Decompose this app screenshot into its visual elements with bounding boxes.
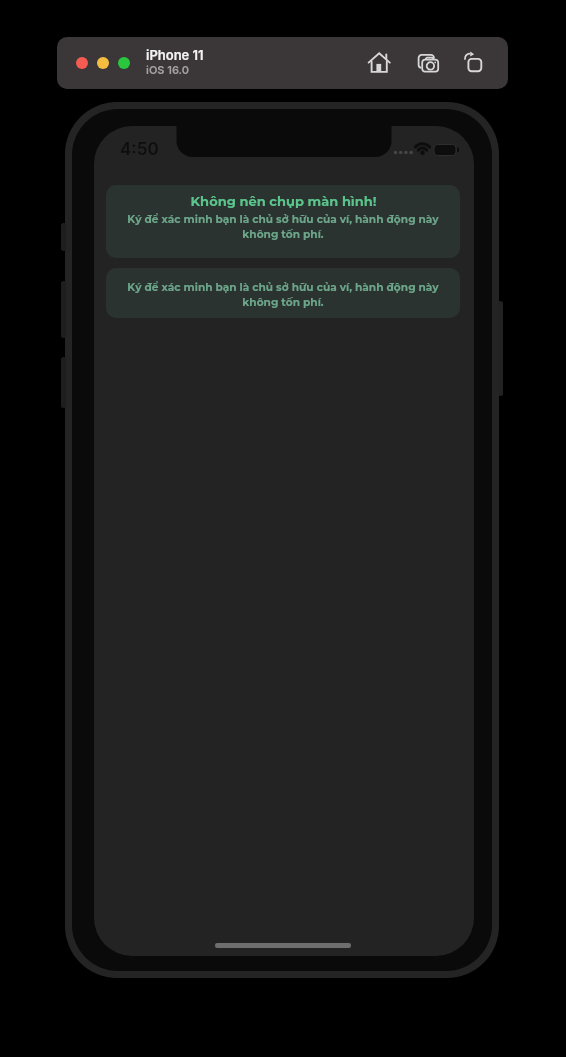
staticText: iOS 16.0 xyxy=(146,63,190,76)
button[interactable]: Không nên chụp màn hình! xyxy=(106,185,460,258)
staticText: Ký để xác minh bạn là chủ sở hữu của ví,… xyxy=(127,281,439,309)
button[interactable] xyxy=(97,57,109,69)
button[interactable] xyxy=(118,57,130,69)
staticText: Không nên chụp màn hình! xyxy=(190,193,377,209)
staticText: 4:50 xyxy=(120,139,159,159)
staticText: iPhone 11 xyxy=(146,47,204,63)
button[interactable] xyxy=(76,57,88,69)
button[interactable]: Ký để xác minh bạn là chủ sở hữu của ví,… xyxy=(106,268,460,318)
button[interactable] xyxy=(414,49,442,77)
staticText: Ký để xác minh bạn là chủ sở hữu của ví,… xyxy=(127,213,439,241)
button[interactable] xyxy=(457,49,485,77)
button[interactable] xyxy=(366,49,394,77)
